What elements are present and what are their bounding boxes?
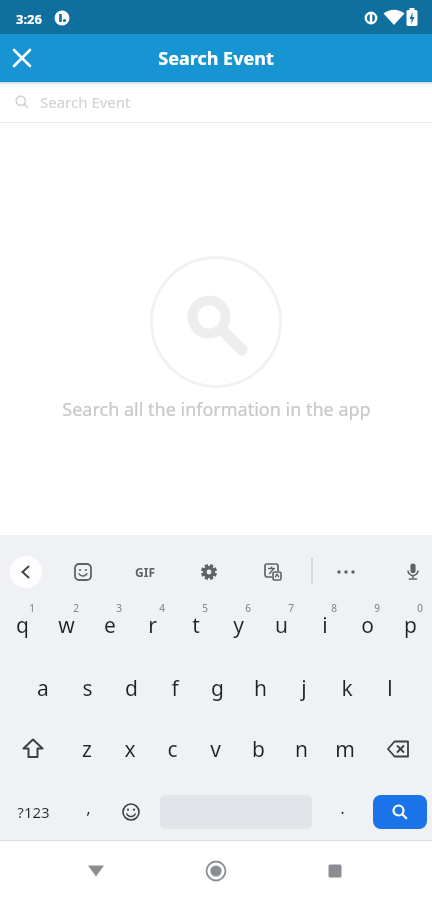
button[interactable] xyxy=(67,556,99,588)
staticText: 9 xyxy=(374,601,380,615)
button[interactable] xyxy=(0,34,48,82)
button[interactable] xyxy=(373,795,427,829)
button[interactable]: q xyxy=(0,597,44,653)
staticText: h xyxy=(254,674,267,703)
staticText: 0 xyxy=(417,601,423,615)
staticText: g xyxy=(211,674,224,703)
button[interactable] xyxy=(72,847,120,895)
button[interactable] xyxy=(110,794,152,829)
staticText: z xyxy=(82,735,92,764)
button[interactable]: x xyxy=(108,721,151,777)
button[interactable]: , xyxy=(66,794,110,829)
button[interactable] xyxy=(257,556,289,588)
button[interactable]: h xyxy=(239,660,282,716)
staticText: i xyxy=(322,611,328,640)
button[interactable] xyxy=(0,721,65,777)
button[interactable]: . xyxy=(312,794,373,829)
button[interactable]: r xyxy=(131,597,174,653)
staticText: v xyxy=(210,735,221,764)
button[interactable]: i xyxy=(303,597,346,653)
staticText: j xyxy=(301,674,307,703)
staticText: b xyxy=(252,735,265,764)
button[interactable]: a xyxy=(21,660,65,716)
staticText: ?123 xyxy=(17,802,50,822)
button[interactable] xyxy=(193,556,225,588)
staticText: s xyxy=(82,674,93,703)
button[interactable]: ?123 xyxy=(0,794,66,829)
staticText: k xyxy=(341,674,353,703)
staticText: f xyxy=(171,674,179,703)
button[interactable]: f xyxy=(153,660,196,716)
staticText: c xyxy=(167,735,178,764)
button[interactable] xyxy=(397,556,429,588)
button[interactable]: j xyxy=(282,660,325,716)
staticText: 6 xyxy=(245,601,251,615)
staticText: q xyxy=(16,611,29,640)
staticText: w xyxy=(58,611,75,640)
staticText: l xyxy=(387,674,393,703)
button[interactable]: b xyxy=(237,721,280,777)
staticText: a xyxy=(37,674,49,703)
button[interactable]: l xyxy=(368,660,411,716)
button[interactable]: z xyxy=(65,721,108,777)
staticText: 5 xyxy=(202,601,208,615)
button[interactable]: p xyxy=(389,597,432,653)
staticText: 3 xyxy=(116,601,122,615)
button[interactable]: s xyxy=(65,660,109,716)
button[interactable]: GIF xyxy=(129,556,161,588)
staticText: t xyxy=(192,611,200,640)
button[interactable]: y xyxy=(217,597,260,653)
staticText: y xyxy=(233,611,244,640)
staticText: 1 xyxy=(29,601,35,615)
staticText: u xyxy=(275,611,288,640)
staticText: 2 xyxy=(73,601,79,615)
button[interactable]: t xyxy=(174,597,217,653)
staticText: m xyxy=(335,735,355,764)
staticText: x xyxy=(124,735,136,764)
staticText: 3:26 xyxy=(16,10,42,28)
button[interactable]: w xyxy=(44,597,88,653)
button[interactable]: u xyxy=(260,597,303,653)
staticText: , xyxy=(86,796,91,819)
staticText: Search all the information in the app xyxy=(62,397,371,422)
button[interactable] xyxy=(366,721,432,777)
button[interactable]: g xyxy=(196,660,239,716)
button[interactable] xyxy=(10,556,42,588)
button[interactable]: k xyxy=(325,660,368,716)
button[interactable]: n xyxy=(280,721,323,777)
button[interactable]: o xyxy=(346,597,389,653)
staticText: GIF xyxy=(135,564,155,580)
button[interactable]: d xyxy=(109,660,153,716)
staticText: e xyxy=(104,611,116,640)
button[interactable] xyxy=(311,847,359,895)
staticText: 8 xyxy=(331,601,337,615)
button[interactable]: Search Event xyxy=(0,82,432,122)
staticText: d xyxy=(125,674,138,703)
button[interactable] xyxy=(330,556,362,588)
staticText: n xyxy=(295,735,308,764)
button[interactable]: m xyxy=(323,721,366,777)
staticText: o xyxy=(361,611,374,640)
staticText: Search Event xyxy=(40,92,131,112)
staticText: r xyxy=(148,611,157,640)
staticText: . xyxy=(340,796,345,819)
staticText: p xyxy=(404,611,417,640)
button[interactable]: c xyxy=(151,721,194,777)
staticText: 7 xyxy=(288,601,294,615)
staticText: Search Event xyxy=(158,46,274,71)
button[interactable]: v xyxy=(194,721,237,777)
button[interactable]: e xyxy=(88,597,131,653)
button[interactable] xyxy=(192,847,240,895)
staticText: 4 xyxy=(159,601,165,615)
